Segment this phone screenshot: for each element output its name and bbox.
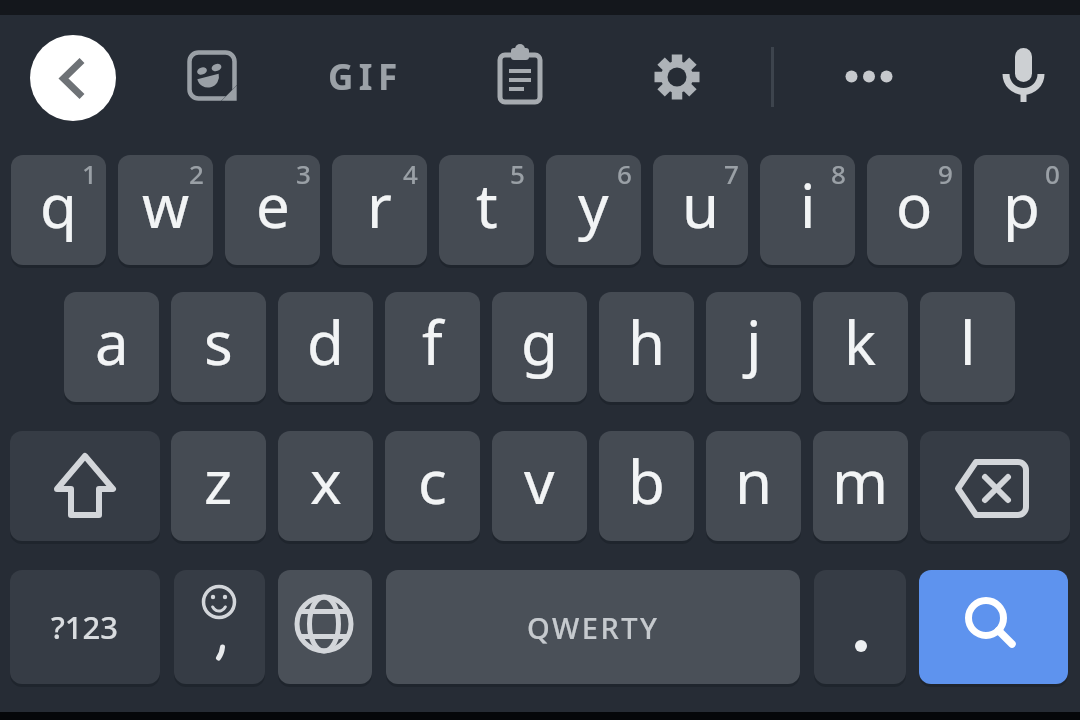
- staticText: y: [578, 164, 609, 246]
- staticText: r: [367, 164, 392, 246]
- staticText: 6: [617, 156, 632, 191]
- staticText: t: [476, 164, 498, 246]
- staticText: 4: [403, 156, 418, 191]
- staticText: 7: [724, 156, 739, 191]
- staticText: a: [95, 301, 129, 383]
- staticText: j: [746, 301, 762, 383]
- staticText: 5: [510, 156, 525, 191]
- staticText: f: [422, 301, 443, 383]
- staticText: q: [40, 164, 77, 246]
- staticText: h: [628, 301, 666, 383]
- staticText: o: [896, 164, 933, 246]
- staticText: n: [735, 440, 773, 522]
- staticText: 1: [82, 156, 97, 191]
- staticText: 2: [189, 156, 204, 191]
- staticText: 3: [296, 156, 311, 191]
- staticText: i: [800, 164, 816, 246]
- staticText: p: [1003, 164, 1040, 246]
- staticText: v: [524, 440, 555, 522]
- staticText: 0: [1045, 156, 1060, 191]
- staticText: s: [204, 301, 233, 383]
- staticText: l: [960, 301, 976, 383]
- staticText: 9: [938, 156, 953, 191]
- staticText: u: [682, 164, 720, 246]
- staticText: d: [307, 301, 344, 383]
- staticText: x: [310, 440, 342, 522]
- staticText: k: [844, 301, 877, 383]
- staticText: 8: [831, 156, 846, 191]
- staticText: g: [521, 301, 558, 383]
- staticText: c: [418, 440, 447, 522]
- staticText: w: [142, 164, 190, 246]
- staticText: e: [256, 164, 290, 246]
- staticText: ?123: [51, 606, 119, 648]
- staticText: GIF: [328, 53, 403, 101]
- staticText: b: [628, 440, 665, 522]
- staticText: QWERTY: [527, 608, 660, 647]
- staticText: z: [204, 440, 233, 522]
- staticText: m: [832, 440, 889, 522]
